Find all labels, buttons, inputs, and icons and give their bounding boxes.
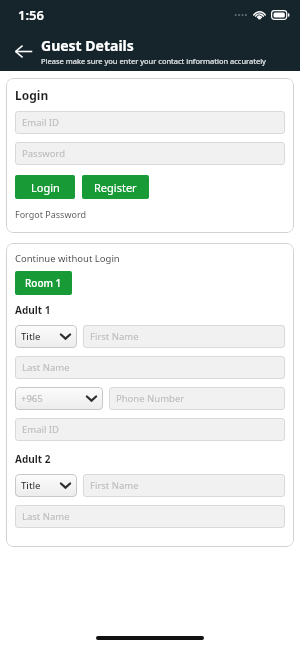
button[interactable]: Back (8, 36, 38, 66)
staticText: Password (22, 147, 65, 160)
button[interactable]: Forgot Password (15, 208, 87, 220)
button[interactable]: First Name (83, 325, 285, 348)
staticText: Last Name (22, 361, 70, 374)
staticText: Title (21, 330, 41, 343)
staticText: Register (94, 180, 137, 195)
staticText: Please make sure you enter your contact … (41, 56, 266, 66)
staticText: Login (31, 180, 60, 195)
staticText: Continue without Login (15, 252, 120, 265)
button[interactable]: Title (15, 325, 77, 348)
staticText: Room 1 (25, 276, 62, 290)
staticText: Email ID (22, 423, 60, 436)
staticText: First Name (90, 330, 139, 343)
button[interactable]: Title (15, 474, 77, 497)
staticText: Guest Details (41, 36, 134, 55)
staticText: 1:56 (18, 6, 44, 24)
button[interactable]: Last Name (15, 356, 285, 379)
staticText: Phone Number (116, 392, 185, 405)
button[interactable]: Login (15, 175, 75, 199)
button[interactable]: Password (15, 142, 285, 165)
button[interactable]: Email ID (15, 111, 285, 134)
button[interactable]: First Name (83, 474, 285, 497)
button[interactable]: +965 (15, 387, 103, 410)
staticText: Forgot Password (15, 208, 87, 220)
staticText: First Name (90, 479, 139, 492)
staticText: Title (21, 479, 41, 492)
staticText: Last Name (22, 510, 70, 523)
staticText: Login (15, 87, 49, 103)
staticText: Adult 2 (15, 452, 51, 466)
button[interactable]: Phone Number (109, 387, 285, 410)
button[interactable]: Last Name (15, 505, 285, 528)
button[interactable]: Email ID (15, 418, 285, 441)
staticText: Adult 1 (15, 303, 51, 317)
button[interactable]: Register (82, 175, 149, 199)
staticText: Email ID (22, 116, 60, 129)
button[interactable]: Room 1 (15, 271, 72, 295)
staticText: +965 (21, 392, 43, 405)
